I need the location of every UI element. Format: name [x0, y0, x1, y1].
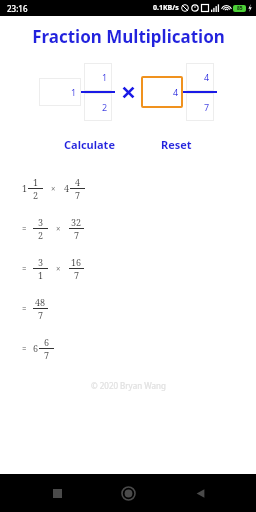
staticText: 85: [237, 5, 243, 12]
staticText: 2: [33, 189, 39, 201]
staticText: 6: [44, 336, 50, 348]
button[interactable]: Calculate: [56, 133, 123, 156]
staticText: 7: [38, 309, 44, 321]
staticText: 23:16: [7, 3, 28, 14]
button[interactable]: Back: [185, 478, 215, 508]
staticText: 4: [75, 176, 81, 188]
button[interactable]: 7: [186, 93, 214, 121]
staticText: 32: [71, 216, 82, 228]
staticText: 2: [38, 229, 44, 241]
staticText: Reset: [161, 137, 192, 152]
staticText: 4: [173, 86, 179, 98]
staticText: ×: [56, 223, 61, 234]
button[interactable]: Recent apps: [42, 478, 72, 508]
staticText: 2: [102, 101, 108, 113]
button[interactable]: 1: [84, 63, 112, 91]
staticText: 48: [35, 296, 46, 308]
staticText: =: [22, 223, 27, 234]
staticText: 0.1KB/s: [153, 3, 179, 13]
staticText: 6: [33, 342, 39, 354]
staticText: =: [22, 303, 27, 314]
staticText: 7: [74, 229, 80, 241]
button[interactable]: 4: [186, 63, 214, 91]
staticText: =: [22, 263, 27, 274]
staticText: 1: [71, 86, 77, 98]
staticText: 1: [38, 269, 44, 281]
button[interactable]: 4: [141, 76, 183, 108]
staticText: 7: [75, 189, 81, 201]
button[interactable]: Multiply: [115, 79, 141, 105]
button[interactable]: Home: [113, 478, 143, 508]
staticText: 1: [102, 71, 108, 83]
staticText: 3: [38, 216, 44, 228]
staticText: ×: [56, 263, 61, 274]
staticText: © 2020 Bryan Wang: [91, 380, 166, 391]
button[interactable]: 1: [39, 78, 81, 106]
staticText: 7: [204, 101, 210, 113]
staticText: 7: [44, 349, 50, 361]
button[interactable]: Reset: [153, 133, 200, 156]
staticText: 3: [38, 256, 44, 268]
staticText: 1: [22, 182, 28, 194]
staticText: =: [22, 343, 27, 354]
staticText: ×: [51, 183, 56, 194]
staticText: 16: [71, 256, 82, 268]
staticText: 1: [33, 176, 39, 188]
staticText: 4: [204, 71, 210, 83]
staticText: Fraction Multiplication: [32, 25, 225, 48]
staticText: Calculate: [64, 137, 115, 152]
staticText: 4: [64, 182, 70, 194]
button[interactable]: 2: [84, 93, 112, 121]
staticText: 7: [74, 269, 80, 281]
